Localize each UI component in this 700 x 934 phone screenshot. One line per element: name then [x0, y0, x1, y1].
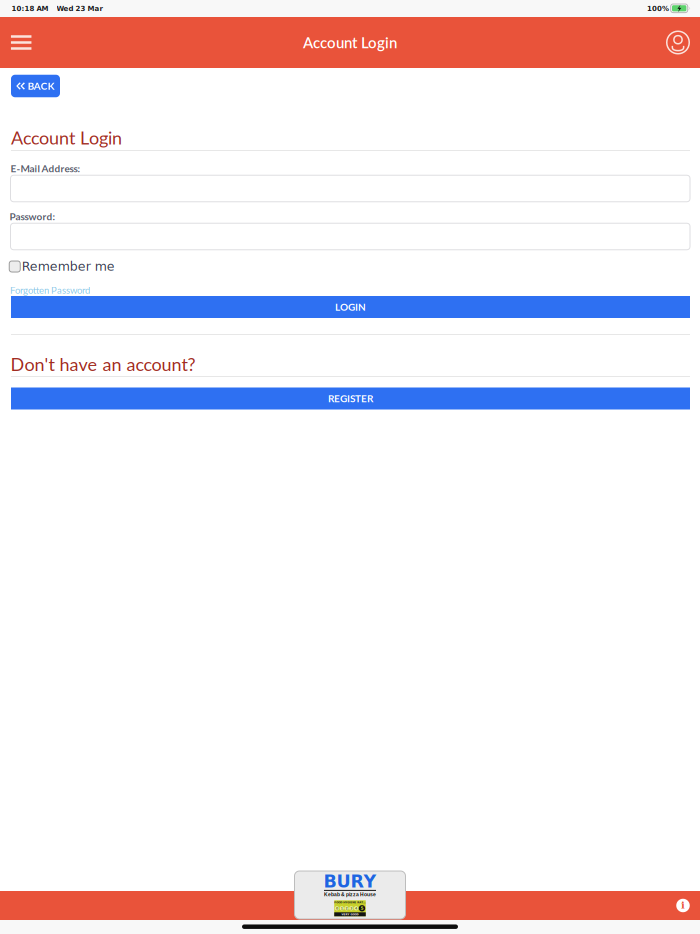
staticText: 100% — [647, 4, 669, 12]
staticText: i — [681, 899, 685, 911]
button[interactable]: BACK — [11, 75, 60, 97]
staticText: Account Login — [303, 33, 397, 51]
staticText: 10:18 AM — [11, 4, 48, 12]
button[interactable]: Forgotten Password — [10, 284, 90, 296]
button[interactable]: Remember me — [9, 258, 115, 274]
staticText: Kebab & pizza House — [324, 892, 376, 897]
staticText: LOGIN — [335, 301, 366, 313]
staticText: FOOD HYGIENE RATING — [334, 901, 366, 904]
button[interactable]: Menu — [0, 17, 43, 68]
staticText: Remember me — [22, 259, 115, 274]
staticText: BURY — [323, 871, 376, 892]
staticText: 1 — [341, 906, 343, 910]
staticText: Forgotten Password — [10, 284, 90, 296]
button[interactable]: REGISTER — [11, 387, 690, 409]
staticText: Don't have an account? — [10, 353, 195, 375]
button[interactable]: Information — [669, 891, 697, 919]
staticText: Wed 23 Mar — [56, 4, 102, 12]
staticText: E-Mail Address: — [10, 162, 80, 174]
staticText: 2 — [345, 906, 347, 910]
staticText: 0 — [336, 906, 338, 910]
button[interactable]: LOGIN — [11, 296, 690, 318]
staticText: Password: — [9, 210, 55, 222]
staticText: VERY GOOD — [341, 913, 358, 916]
button[interactable]: Account — [656, 17, 699, 68]
staticText: 4 — [355, 906, 357, 910]
staticText: Account Login — [11, 127, 122, 148]
staticText: BACK — [28, 80, 55, 92]
staticText: REGISTER — [328, 392, 373, 404]
staticText: 5 — [360, 906, 363, 911]
staticText: 3 — [350, 906, 352, 910]
